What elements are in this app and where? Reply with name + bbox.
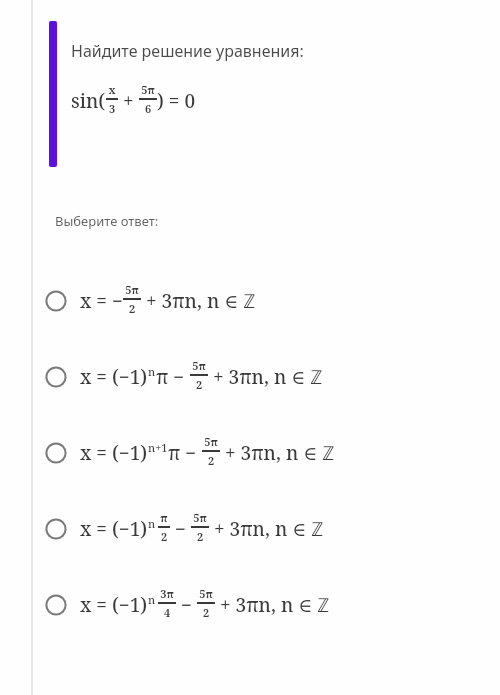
staticText: Найдите решение уравнения: <box>71 40 304 62</box>
staticText: π − <box>156 364 190 390</box>
staticText: 2 <box>190 377 208 392</box>
staticText: x = (−1) <box>80 592 148 618</box>
other: Answer option 4 <box>45 518 67 540</box>
staticText: x = (−1) <box>80 516 148 542</box>
staticText: + 3πn, n ∈ ℤ <box>208 364 323 390</box>
staticText: π − <box>168 440 202 466</box>
staticText: 2 <box>158 529 170 544</box>
other: Answer option 2 <box>45 366 67 388</box>
staticText: n+1 <box>148 440 168 455</box>
button[interactable]: Answer option 2 <box>31 352 500 402</box>
staticText: x = − <box>80 288 123 314</box>
staticText: n <box>148 516 156 531</box>
staticText: ) = 0 <box>157 88 196 114</box>
staticText: − <box>170 516 191 542</box>
staticText: Выберите ответ: <box>55 212 159 230</box>
staticText: 5π <box>139 82 157 97</box>
staticText: 5π <box>190 358 208 373</box>
staticText: n <box>148 364 156 379</box>
other: Answer option 5 <box>45 594 67 616</box>
button[interactable]: Answer option 1 <box>31 276 500 326</box>
staticText: π <box>158 510 170 525</box>
staticText: n <box>148 592 156 607</box>
staticText: 5π <box>197 586 215 601</box>
staticText: 5π <box>202 434 220 449</box>
button[interactable]: Answer option 3 <box>31 428 500 478</box>
staticText: − <box>176 592 197 618</box>
staticText: 3 <box>106 101 118 116</box>
staticText: sin( <box>71 88 106 114</box>
staticText: 2 <box>191 529 209 544</box>
staticText: + 3πn, n ∈ ℤ <box>141 288 256 314</box>
staticText: 2 <box>202 453 220 468</box>
staticText: 2 <box>123 301 141 316</box>
staticText: 6 <box>139 101 157 116</box>
staticText: 5π <box>191 510 209 525</box>
staticText: + 3πn, n ∈ ℤ <box>209 516 324 542</box>
staticText: x <box>106 82 118 97</box>
staticText: 3π <box>158 586 176 601</box>
staticText: 5π <box>123 282 141 297</box>
staticText: + 3πn, n ∈ ℤ <box>215 592 330 618</box>
staticText: x = (−1) <box>80 440 148 466</box>
staticText: 2 <box>197 605 215 620</box>
staticText: x = (−1) <box>80 364 148 390</box>
staticText: 4 <box>158 605 176 620</box>
button[interactable]: Answer option 5 <box>31 580 500 630</box>
other: Answer option 1 <box>45 290 67 312</box>
staticText: + <box>118 88 139 114</box>
button[interactable]: Answer option 4 <box>31 504 500 554</box>
staticText: + 3πn, n ∈ ℤ <box>220 440 335 466</box>
other: Answer option 3 <box>45 442 67 464</box>
